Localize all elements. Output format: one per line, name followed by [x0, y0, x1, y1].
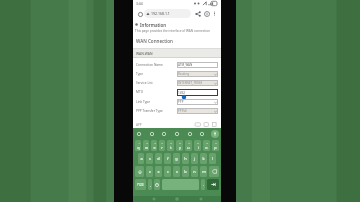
button[interactable]: d: [155, 153, 162, 164]
button[interactable]: ?123: [135, 179, 146, 190]
button[interactable]: k: [200, 153, 207, 164]
staticText: 6: [179, 142, 181, 145]
staticText: k: [202, 156, 205, 161]
button[interactable]: Settings: [186, 130, 193, 137]
button[interactable]: 0: [212, 140, 219, 151]
button[interactable]: More options: [211, 10, 218, 17]
staticText: Service List: [136, 81, 177, 85]
button[interactable]: Home: [174, 196, 180, 202]
button[interactable]: 7: [185, 140, 192, 151]
button[interactable]: GIF: [173, 130, 180, 137]
staticText: m: [202, 169, 206, 174]
staticText: ATM_WAN: [178, 63, 217, 67]
staticText: Type: [136, 72, 177, 76]
button[interactable]: 9: [203, 140, 210, 151]
staticText: 4: [161, 142, 163, 145]
staticText: s: [149, 156, 151, 161]
staticText: l: [212, 156, 213, 161]
button[interactable]: Tabs: [136, 10, 144, 18]
button[interactable]: a: [138, 153, 144, 164]
staticText: PPPoE: [178, 109, 214, 113]
button[interactable]: Backspace: [209, 166, 219, 177]
button[interactable]: m: [200, 166, 207, 177]
button[interactable]: ATM_WAN: [177, 62, 218, 68]
staticText: .: [203, 182, 204, 187]
staticText: 9: [206, 142, 208, 145]
staticText: ,: [150, 182, 151, 187]
button[interactable]: c: [164, 166, 171, 177]
button[interactable]: f: [164, 153, 171, 164]
button[interactable]: 5: [167, 140, 174, 151]
button[interactable]: x: [155, 166, 162, 177]
button[interactable]: h: [182, 153, 189, 164]
staticText: i: [198, 145, 199, 150]
button[interactable]: g: [173, 153, 180, 164]
staticText: Link Type: [136, 100, 177, 104]
staticText: j: [194, 156, 195, 161]
staticText: INTERNET_TR069: [178, 81, 214, 85]
staticText: 1492: [178, 91, 186, 95]
button[interactable]: 4: [159, 140, 165, 151]
staticText: ?123: [137, 183, 144, 187]
button[interactable]: j: [191, 153, 198, 164]
button[interactable]: PPPoE: [177, 108, 218, 114]
button[interactable]: 1492: [177, 89, 218, 96]
button[interactable]: n: [191, 166, 198, 177]
staticText: g: [175, 156, 178, 161]
button[interactable]: 6: [176, 140, 183, 151]
button[interactable]: v: [173, 166, 180, 177]
staticText: 0: [215, 142, 217, 145]
staticText: PPP Transfer Type: [136, 109, 177, 113]
button[interactable]: Clipboard: [148, 130, 155, 137]
staticText: Connection Name: [136, 63, 177, 67]
button[interactable]: Routing: [177, 71, 218, 77]
staticText: x: [157, 169, 160, 174]
staticText: f: [167, 156, 169, 161]
button[interactable]: INTERNET_TR069: [177, 80, 218, 86]
button[interactable]: .: [201, 179, 205, 190]
button[interactable]: 3: [151, 140, 157, 151]
button[interactable]: ,: [148, 179, 152, 190]
button[interactable]: l: [209, 153, 216, 164]
staticText: u: [187, 145, 190, 150]
staticText: Information: [140, 22, 166, 28]
staticText: d: [157, 156, 160, 161]
staticText: z: [149, 169, 151, 174]
staticText: a: [140, 156, 143, 161]
button[interactable]: 2: [143, 140, 149, 151]
button[interactable]: Theme: [198, 130, 205, 137]
button[interactable]: Reload: [202, 9, 211, 18]
button[interactable]: Recents: [198, 196, 204, 202]
staticText: p: [214, 145, 217, 150]
button[interactable]: Shift: [135, 166, 144, 177]
staticText: MTU: [136, 90, 177, 94]
button[interactable]: b: [182, 166, 189, 177]
staticText: v: [176, 169, 178, 174]
button[interactable]: 192.168.1.1: [144, 9, 191, 18]
staticText: WAN-WAN: [136, 51, 153, 55]
button[interactable]: 1: [135, 140, 141, 151]
button[interactable]: Next: [207, 179, 219, 190]
button[interactable]: Back: [151, 196, 157, 202]
staticText: 3: [154, 142, 156, 145]
button[interactable]: Emoji: [160, 130, 167, 137]
staticText: o: [205, 145, 208, 150]
button[interactable]: 8: [194, 140, 201, 151]
staticText: b: [184, 169, 187, 174]
staticText: y: [179, 145, 181, 150]
button[interactable]: Apps: [135, 130, 142, 137]
button[interactable]: Voice input: [211, 130, 219, 138]
button[interactable]: z: [146, 166, 153, 177]
button[interactable]: Share: [193, 9, 202, 18]
staticText: 3:44: [136, 1, 143, 6]
staticText: WAN Connection: [136, 38, 173, 44]
staticText: 8: [197, 142, 199, 145]
button[interactable]: Emoji: [154, 179, 160, 190]
staticText: w: [145, 145, 148, 150]
staticText: PPP: [178, 100, 214, 104]
staticText: r: [161, 145, 163, 150]
button[interactable]: PPP: [177, 99, 218, 105]
button[interactable]: s: [146, 153, 153, 164]
staticText: Routing: [178, 72, 214, 76]
